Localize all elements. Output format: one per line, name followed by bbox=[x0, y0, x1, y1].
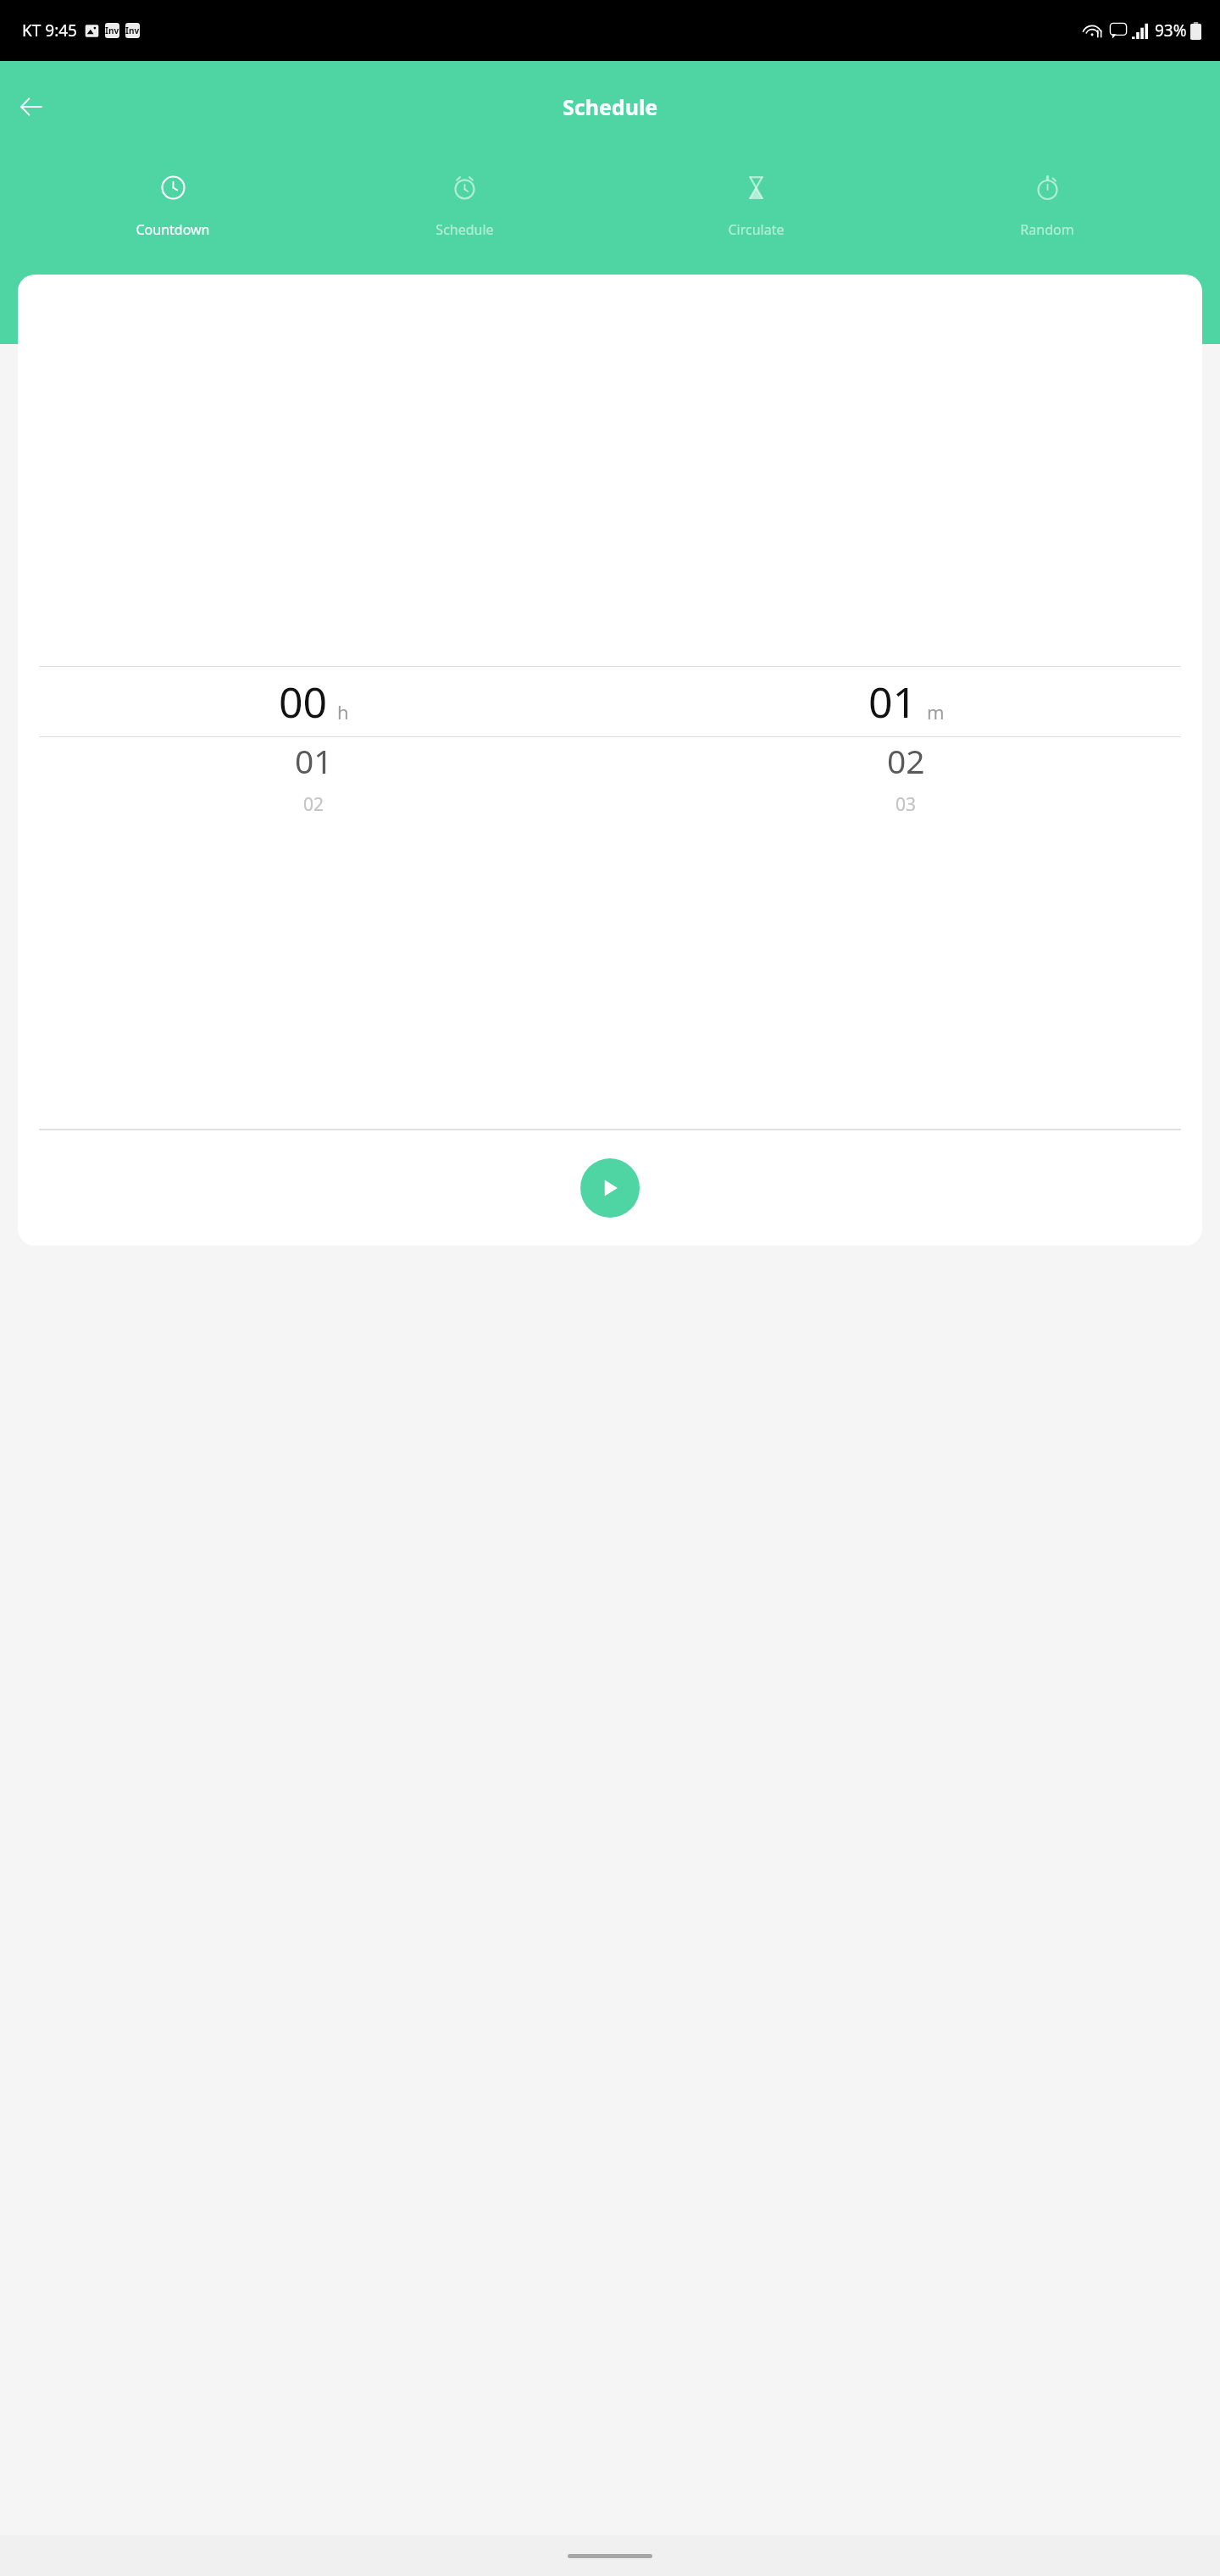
staticText: Schedule bbox=[435, 220, 494, 239]
staticText: Countdown bbox=[136, 220, 210, 239]
button[interactable]: Circulate bbox=[610, 171, 901, 242]
staticText: m bbox=[927, 699, 945, 724]
button[interactable]: Back bbox=[7, 82, 56, 131]
staticText: KT 9:45 bbox=[22, 19, 77, 42]
button[interactable]: Schedule bbox=[319, 171, 610, 242]
button[interactable]: Start bbox=[580, 1158, 640, 1218]
button[interactable]: Random bbox=[901, 171, 1193, 242]
staticText: 01 bbox=[295, 738, 333, 783]
button[interactable]: 01 bbox=[610, 667, 1202, 824]
staticText: Schedule bbox=[563, 92, 658, 121]
staticText: Inv bbox=[105, 25, 119, 36]
staticText: 93% bbox=[1155, 19, 1187, 42]
button[interactable]: 00 bbox=[18, 667, 610, 824]
staticText: Random bbox=[1020, 220, 1074, 239]
button[interactable]: Countdown bbox=[27, 171, 319, 242]
staticText: 02 bbox=[303, 792, 324, 817]
staticText: 03 bbox=[896, 792, 917, 817]
staticText: Circulate bbox=[728, 220, 785, 239]
staticText: h bbox=[337, 699, 349, 724]
staticText: 00 bbox=[279, 673, 328, 730]
staticText: 02 bbox=[887, 738, 925, 783]
staticText: Inv bbox=[125, 25, 140, 36]
staticText: 01 bbox=[868, 673, 918, 730]
